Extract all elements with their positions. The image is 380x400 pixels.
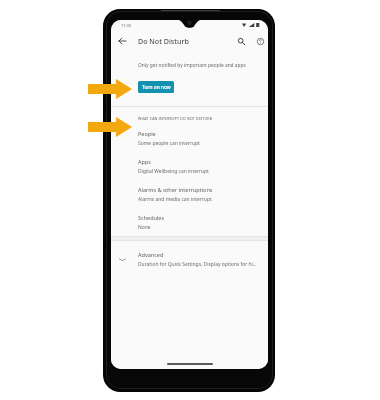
staticText: 11:30	[121, 23, 131, 28]
button[interactable]: Apps	[111, 152, 268, 181]
button[interactable]: Turn on now	[138, 81, 174, 93]
staticText: Duration for Quick Settings, Display opt…	[138, 261, 257, 268]
staticText: Only get notified by important people an…	[138, 62, 246, 69]
button[interactable]: Advanced	[111, 245, 268, 273]
staticText: People	[138, 130, 156, 137]
button[interactable]: Schedules	[111, 208, 268, 237]
button[interactable]: Alarms & other interruptions	[111, 180, 268, 209]
staticText: Alarms & other interruptions	[138, 186, 213, 193]
button[interactable]: Help	[252, 31, 268, 51]
staticText: Digital Wellbeing can interrupt	[138, 168, 209, 175]
button[interactable]: Search	[233, 31, 249, 51]
button[interactable]: Back	[114, 31, 130, 51]
staticText: WHAT CAN INTERRUPT DO NOT DISTURB	[138, 116, 213, 121]
staticText: Advanced	[138, 251, 164, 258]
staticText: None	[138, 224, 151, 231]
button[interactable]: People	[111, 124, 268, 153]
staticText: Turn on now	[142, 84, 171, 91]
staticText: Some people can interrupt	[138, 140, 200, 147]
staticText: Alarms and media can interrupt	[138, 196, 212, 203]
staticText: Schedules	[138, 214, 165, 221]
staticText: Do Not Disturb	[138, 36, 189, 46]
staticText: Apps	[138, 158, 151, 165]
